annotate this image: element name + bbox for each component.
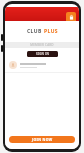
button[interactable]: Cart [66,12,76,23]
button[interactable]: SIGN IN [27,51,58,57]
staticText: PLUS [44,28,58,35]
button[interactable]: JOIN NOW [9,136,75,143]
staticText: SIGN IN [36,52,50,56]
staticText: CLUB [27,28,42,35]
staticText: JOIN NOW [32,137,53,142]
button[interactable]: MEMBER CARD [5,42,79,48]
staticText: MEMBER CARD [30,43,54,47]
button[interactable] [9,61,75,69]
button[interactable]: CLUB [5,28,79,35]
button[interactable] [5,7,79,21]
